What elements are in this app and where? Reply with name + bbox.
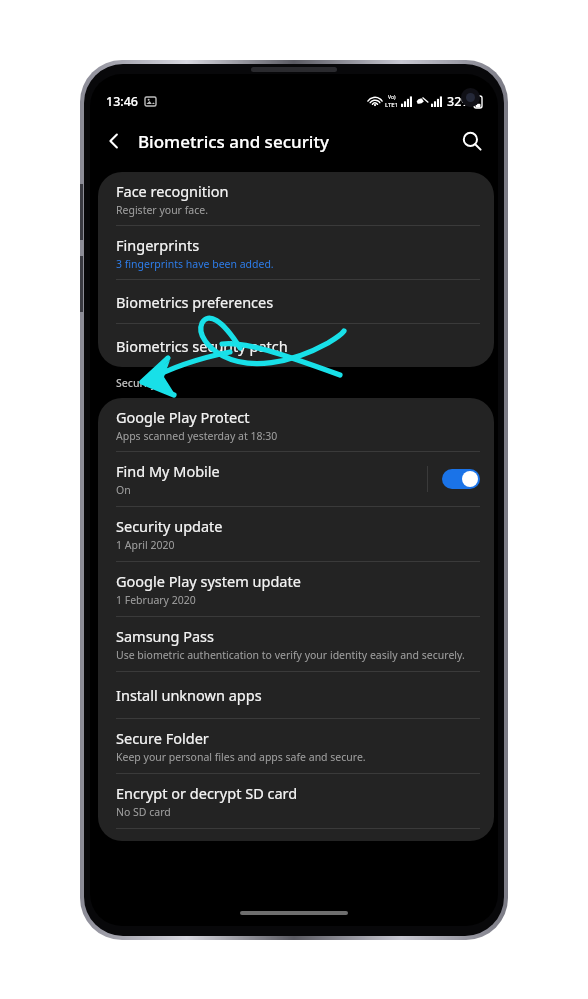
- staticText: 3 fingerprints have been added.: [116, 257, 274, 271]
- staticText: Security update: [116, 516, 223, 536]
- button[interactable]: Biometrics security patch: [98, 324, 494, 367]
- staticText: Secure Folder: [116, 728, 209, 748]
- staticText: Register your face.: [116, 203, 208, 217]
- staticText: Keep your personal files and apps safe a…: [116, 750, 366, 764]
- button[interactable]: Google Play system update: [98, 562, 494, 616]
- staticText: Install unknown apps: [116, 685, 262, 705]
- staticText: Fingerprints: [116, 235, 200, 255]
- staticText: Biometrics and security: [138, 130, 329, 153]
- staticText: Samsung Pass: [116, 626, 215, 646]
- button[interactable]: Secure Folder: [98, 719, 494, 773]
- staticText: Biometrics security patch: [116, 336, 288, 356]
- button[interactable]: Google Play Protect: [98, 398, 494, 451]
- button[interactable]: Samsung Pass: [98, 617, 494, 671]
- staticText: Find My Mobile: [116, 461, 220, 481]
- button[interactable]: Biometrics preferences: [98, 280, 494, 323]
- staticText: Google Play system update: [116, 571, 301, 591]
- button[interactable]: Find My Mobile: [98, 452, 494, 506]
- staticText: Encrypt or decrypt SD card: [116, 783, 298, 803]
- staticText: Face recognition: [116, 181, 229, 201]
- staticText: Vo): [388, 94, 396, 101]
- button[interactable]: Fingerprints: [98, 226, 494, 279]
- staticText: Biometrics preferences: [116, 292, 274, 312]
- staticText: Apps scanned yesterday at 18:30: [116, 429, 278, 443]
- staticText: On: [116, 483, 131, 497]
- button[interactable]: Back: [90, 117, 138, 165]
- staticText: 32%: [447, 93, 472, 110]
- staticText: Security: [116, 376, 157, 390]
- staticText: 1 February 2020: [116, 593, 196, 607]
- staticText: LTE1: [385, 101, 399, 109]
- button[interactable]: Face recognition: [98, 172, 494, 225]
- staticText: No SD card: [116, 805, 171, 819]
- staticText: 1 April 2020: [116, 538, 175, 552]
- staticText: 13:46: [106, 93, 139, 110]
- button[interactable]: Security update: [98, 507, 494, 561]
- button[interactable]: Find My Mobile toggle, on: [442, 469, 480, 489]
- staticText: Use biometric authentication to verify y…: [116, 648, 465, 662]
- staticText: Google Play Protect: [116, 407, 250, 427]
- button[interactable]: Encrypt or decrypt SD card: [98, 774, 494, 828]
- button[interactable]: Search: [446, 115, 498, 167]
- button[interactable]: Install unknown apps: [98, 672, 494, 718]
